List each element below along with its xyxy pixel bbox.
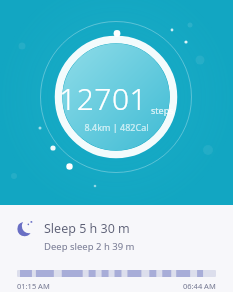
- staticText: Deep sleep 2 h 39 m: [44, 240, 135, 253]
- staticText: steps: [151, 104, 174, 116]
- button[interactable]: Sleep 5 h 30 m: [0, 205, 233, 292]
- staticText: 8.4km | 482Cal: [84, 121, 149, 133]
- staticText: 06:44 AM: [183, 281, 216, 291]
- staticText: Sleep 5 h 30 m: [44, 220, 130, 237]
- staticText: 01:15 AM: [17, 281, 50, 291]
- staticText: 12701: [59, 78, 148, 119]
- button[interactable]: Step count 12701 steps: [0, 0, 233, 205]
